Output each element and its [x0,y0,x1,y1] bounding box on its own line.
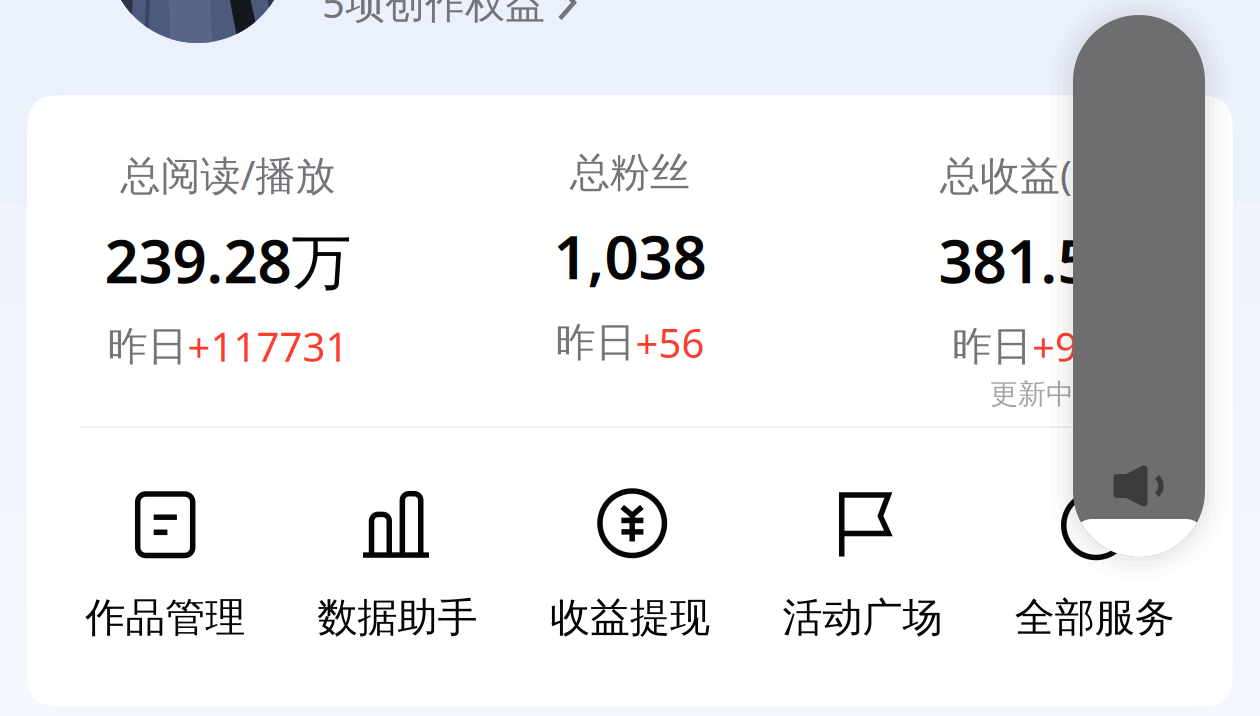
staticText: 全部服务 [1015,593,1175,642]
staticText: +56 [635,316,704,369]
button[interactable]: 总粉丝 [429,148,831,426]
staticText: 活动广场 [782,593,942,642]
staticText: 更新中 [990,377,1074,411]
button[interactable]: 活动广场 [746,487,979,642]
staticText: 昨日 [107,322,187,371]
staticText: 作品管理 [85,593,245,642]
staticText: 总收益(元) [940,148,1124,201]
button[interactable]: 收益提现 [514,487,746,642]
button[interactable]: 总阅读/播放 [27,148,429,426]
staticText: +9.2 [1032,320,1112,373]
staticText: 总阅读/播放 [120,148,335,201]
staticText: 1,038 [553,216,706,296]
staticText: 收益提现 [550,593,710,642]
staticText: 总粉丝 [570,148,690,197]
button[interactable]: 5项创作权益 [322,0,577,29]
button[interactable]: 总收益(元) [831,148,1233,426]
staticText: 昨日 [952,322,1032,371]
button[interactable]: 作品管理 [49,487,281,642]
staticText: 5项创作权益 [322,0,545,29]
button[interactable]: 数据助手 [281,487,514,642]
staticText: 数据助手 [318,593,478,642]
staticText: +117731 [187,320,348,373]
staticText: 381.56 [938,220,1125,300]
staticText: 239.28万 [104,220,351,300]
button[interactable]: 全部服务 [979,487,1211,642]
staticText: 昨日 [555,318,635,367]
